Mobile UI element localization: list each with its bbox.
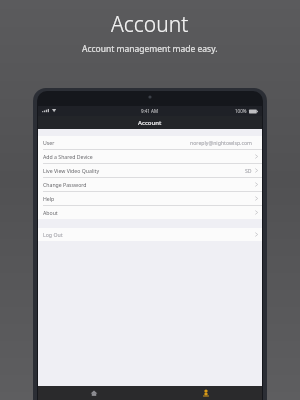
button[interactable]: Log Out — [38, 228, 262, 241]
button[interactable]: Help — [38, 191, 262, 205]
staticText: Account management made easy. — [82, 43, 218, 55]
button[interactable]: User — [38, 136, 262, 149]
staticText: Live View Video Quality — [43, 167, 100, 174]
button[interactable]: Live View Video Quality — [38, 163, 262, 177]
staticText: 100% — [235, 108, 247, 114]
button[interactable]: Account — [150, 386, 262, 400]
staticText: Change Password — [43, 181, 87, 188]
staticText: SD — [245, 167, 252, 174]
staticText: Account — [111, 10, 189, 39]
staticText: Log Out — [43, 231, 63, 238]
button[interactable]: Add a Shared Device — [38, 149, 262, 163]
button[interactable]: Home — [38, 386, 150, 400]
staticText: noreply@nightowlsp.com — [190, 139, 252, 146]
button[interactable]: About — [38, 205, 262, 219]
staticText: Add a Shared Device — [43, 153, 93, 160]
staticText: Help — [43, 195, 55, 202]
staticText: 9:41 AM — [141, 108, 159, 114]
staticText: User — [43, 139, 55, 146]
button[interactable]: Change Password — [38, 177, 262, 191]
staticText: About — [43, 209, 58, 216]
staticText: Account — [138, 119, 162, 127]
